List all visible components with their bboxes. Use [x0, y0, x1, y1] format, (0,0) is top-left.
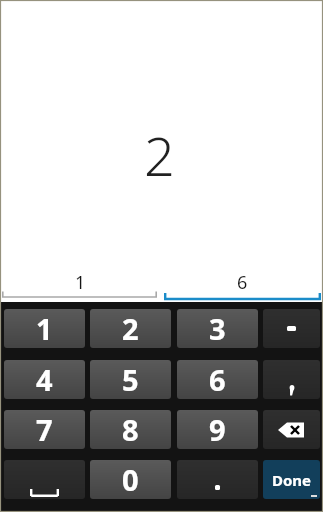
staticText: 1: [36, 309, 53, 348]
staticText: 6: [237, 270, 248, 294]
button[interactable]: 1: [0, 270, 160, 294]
button[interactable]: 7: [4, 410, 85, 449]
staticText: 1: [75, 270, 86, 294]
button[interactable]: [263, 360, 320, 399]
button[interactable]: 8: [90, 410, 171, 449]
button[interactable]: 1: [4, 309, 85, 348]
button[interactable]: 6: [163, 270, 322, 294]
button[interactable]: 3: [177, 309, 258, 348]
button[interactable]: [263, 410, 320, 449]
button[interactable]: 4: [4, 360, 85, 399]
button[interactable]: 2: [90, 309, 171, 348]
button[interactable]: [177, 460, 258, 499]
button[interactable]: 5: [90, 360, 171, 399]
button[interactable]: Done: [263, 460, 320, 499]
staticText: 7: [36, 410, 53, 449]
staticText: 2: [122, 309, 139, 348]
staticText: 3: [209, 309, 226, 348]
button[interactable]: [4, 460, 85, 499]
staticText: 8: [122, 410, 139, 449]
staticText: 0: [122, 460, 139, 499]
staticText: 5: [122, 360, 139, 399]
staticText: 6: [209, 360, 226, 399]
staticText: 4: [36, 360, 53, 399]
button[interactable]: 0: [90, 460, 171, 499]
button[interactable]: 6: [177, 360, 258, 399]
staticText: 2: [0, 118, 321, 192]
button[interactable]: 9: [177, 410, 258, 449]
staticText: Done: [272, 470, 312, 490]
staticText: 9: [209, 410, 226, 449]
button[interactable]: [263, 309, 320, 348]
